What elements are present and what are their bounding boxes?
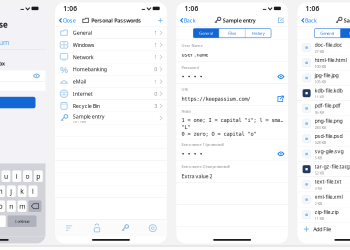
staticText: Upgrade to Premium xyxy=(0,38,9,47)
staticText: 11 KB xyxy=(315,216,325,221)
button[interactable]: l xyxy=(28,185,37,197)
staticText: Extra name 1 (protected) xyxy=(181,142,223,147)
staticText: Network xyxy=(73,54,94,61)
button[interactable]: u xyxy=(1,170,10,182)
button[interactable]: kdb-file.kdb xyxy=(298,86,350,101)
staticText: 105 KB xyxy=(315,79,327,84)
staticText: Unlock database xyxy=(0,19,8,30)
staticText: Windows xyxy=(73,41,95,48)
staticText: History xyxy=(252,30,265,36)
button[interactable]: History xyxy=(245,29,271,38)
button[interactable]: k xyxy=(18,185,27,197)
staticText: "L" xyxy=(181,124,190,130)
staticText: 283 KB xyxy=(315,125,327,130)
button[interactable]: text-file.txt xyxy=(298,177,350,192)
button[interactable]: psd-file.psd xyxy=(298,131,350,146)
button[interactable]: html-file.html xyxy=(298,55,350,70)
staticText: m xyxy=(19,202,25,211)
button[interactable]: Files xyxy=(219,29,245,38)
button[interactable]: Delete xyxy=(28,200,41,212)
button[interactable]: b xyxy=(0,200,5,212)
staticText: Homebanking xyxy=(73,66,107,73)
staticText: Internet xyxy=(73,90,93,97)
button[interactable]: Windows xyxy=(55,39,167,51)
button[interactable]: General xyxy=(193,29,219,38)
staticText: png-file.png xyxy=(315,117,343,124)
button[interactable]: General xyxy=(314,29,340,38)
button[interactable]: Settings xyxy=(139,225,167,232)
staticText: 11 KB xyxy=(315,94,325,100)
button[interactable]: m xyxy=(18,200,27,212)
button[interactable]: Upgrade to Premium xyxy=(0,30,9,47)
staticText: 0 = zero; O = capital "o" xyxy=(181,131,256,137)
button[interactable]: svg-gile.svg xyxy=(298,147,350,161)
staticText: URL xyxy=(181,87,188,92)
button[interactable]: Back xyxy=(176,17,198,24)
staticText: k xyxy=(20,187,24,196)
staticText: 46 KB xyxy=(315,109,325,115)
button[interactable]: Internet xyxy=(55,88,167,100)
button[interactable]: Network xyxy=(55,51,167,63)
staticText: 27 KB xyxy=(315,49,325,54)
staticText: html-file.html xyxy=(315,56,347,63)
button[interactable]: xml-file.xml xyxy=(298,192,350,207)
staticText: Add File xyxy=(313,226,331,233)
staticText: l xyxy=(32,187,34,196)
staticText: Password xyxy=(181,65,198,70)
button[interactable]: Space xyxy=(0,215,6,227)
button[interactable]: j xyxy=(7,185,16,197)
staticText: Extra name 2 (not protected) xyxy=(181,164,229,169)
button[interactable]: % xyxy=(55,63,167,75)
staticText: n xyxy=(9,202,13,211)
button[interactable]: Unlock xyxy=(0,97,35,108)
staticText: 1:06 xyxy=(184,4,198,13)
staticText: 1 xyxy=(154,29,157,36)
staticText: General xyxy=(199,30,213,36)
button[interactable]: tar-gz-file.tar.gz xyxy=(298,162,350,177)
button[interactable]: i xyxy=(12,170,21,182)
button[interactable]: jpg-file.jpg xyxy=(298,71,350,85)
button[interactable]: Groups xyxy=(55,225,83,231)
staticText: Extra value 2 xyxy=(181,173,212,180)
staticText: i xyxy=(16,172,18,181)
staticText: user name xyxy=(73,120,87,123)
staticText: Recycle Bin xyxy=(73,102,100,109)
staticText: General xyxy=(73,29,92,36)
staticText: Close xyxy=(63,17,76,24)
staticText: 0 xyxy=(154,66,157,73)
staticText: Notes xyxy=(181,108,191,114)
staticText: kdb-file.kdb xyxy=(315,87,343,94)
button[interactable]: eMail xyxy=(55,76,167,87)
button[interactable]: p xyxy=(34,170,43,182)
button[interactable]: doc-file.doc xyxy=(298,40,350,55)
staticText: 1 xyxy=(154,41,157,48)
button[interactable]: Generator xyxy=(111,224,139,232)
button[interactable]: pdf-file.pdf xyxy=(298,101,350,116)
button[interactable]: h xyxy=(0,185,5,197)
staticText: General xyxy=(320,30,334,36)
button[interactable]: Close xyxy=(55,17,78,24)
button[interactable]: png-file.png xyxy=(298,116,350,131)
staticText: 1 xyxy=(154,54,157,61)
staticText: svg-gile.svg xyxy=(315,148,344,155)
button[interactable]: Files xyxy=(341,29,350,38)
button[interactable]: Back xyxy=(298,17,319,24)
button[interactable]: n xyxy=(7,200,16,212)
button[interactable]: Add xyxy=(154,18,167,23)
button[interactable]: General xyxy=(55,27,167,39)
button[interactable]: Add File xyxy=(298,223,350,236)
staticText: Sample entry xyxy=(223,17,256,24)
button[interactable]: Recycle Bin xyxy=(55,100,167,112)
button[interactable]: Passwords xyxy=(83,224,111,232)
button[interactable]: Continue xyxy=(7,215,36,227)
staticText: 0 xyxy=(154,90,157,97)
staticText: % xyxy=(60,63,68,75)
staticText: user.name xyxy=(181,52,208,58)
staticText: • • • • xyxy=(181,74,202,80)
staticText: eMail xyxy=(73,78,86,85)
button[interactable]: Edit xyxy=(274,17,288,23)
staticText: 1 xyxy=(154,78,157,85)
button[interactable]: o xyxy=(23,170,32,182)
button[interactable]: Sample entry xyxy=(55,112,167,124)
button[interactable]: zip-file.zip xyxy=(298,207,350,222)
